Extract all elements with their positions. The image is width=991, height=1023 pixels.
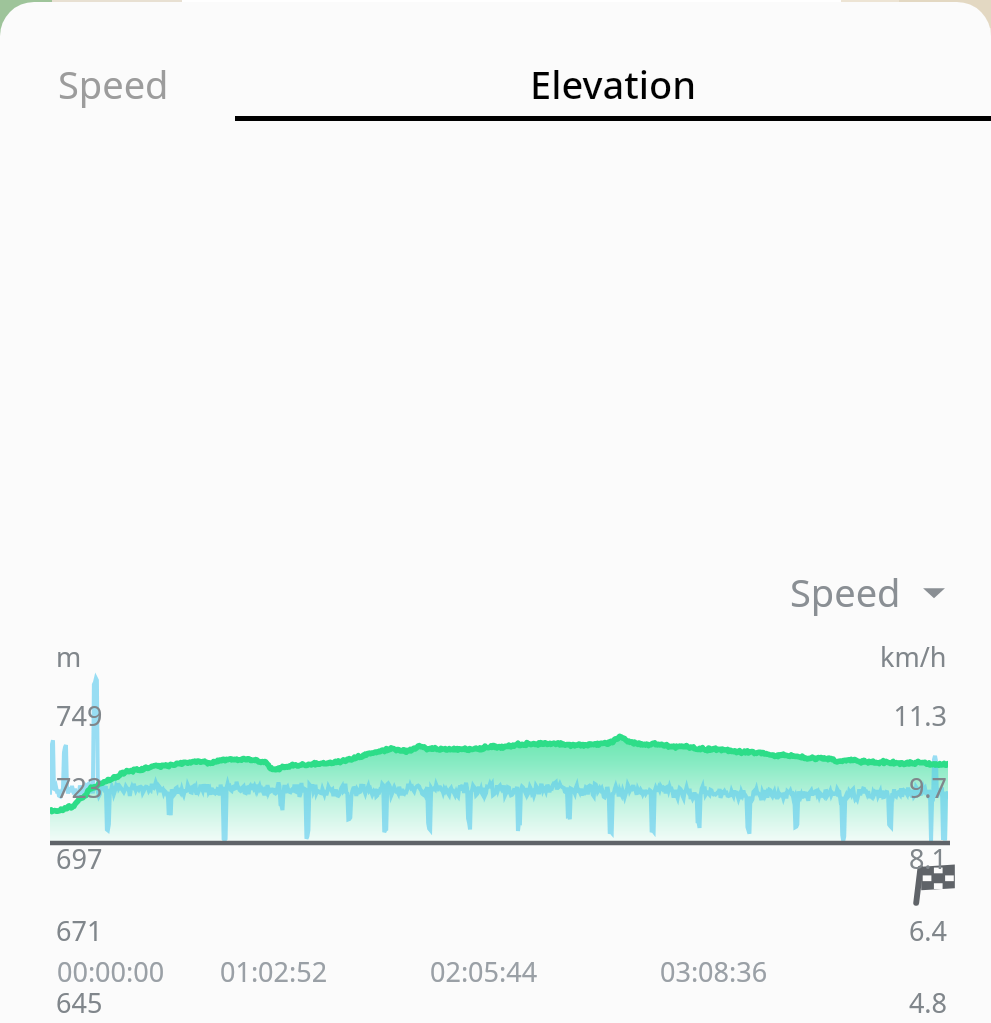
staticText: km/h xyxy=(880,638,947,675)
staticText: 697 xyxy=(56,840,103,877)
staticText: 9.7 xyxy=(0,769,947,806)
staticText: 723 xyxy=(56,769,103,806)
staticText: 00:00:00 xyxy=(57,953,165,990)
staticText: 671 xyxy=(56,912,103,949)
staticText: 11.3 xyxy=(0,697,947,734)
staticText: 01:02:52 xyxy=(220,953,328,990)
staticText: 03:08:36 xyxy=(660,953,768,990)
staticText: 8.1 xyxy=(0,840,947,877)
staticText: 6.4 xyxy=(0,912,947,949)
staticText: Elevation xyxy=(530,58,697,110)
button[interactable]: Speed xyxy=(790,566,947,618)
button[interactable]: Elevation xyxy=(235,58,991,121)
staticText: Speed xyxy=(790,566,901,618)
staticText: 749 xyxy=(56,697,103,734)
staticText: 645 xyxy=(56,984,103,1021)
staticText: Speed xyxy=(58,58,169,110)
staticText: m xyxy=(56,638,82,675)
staticText: 02:05:44 xyxy=(430,953,538,990)
button[interactable]: Speed xyxy=(58,58,169,110)
other: Select metric xyxy=(921,579,947,605)
staticText: 4.8 xyxy=(0,984,947,1021)
